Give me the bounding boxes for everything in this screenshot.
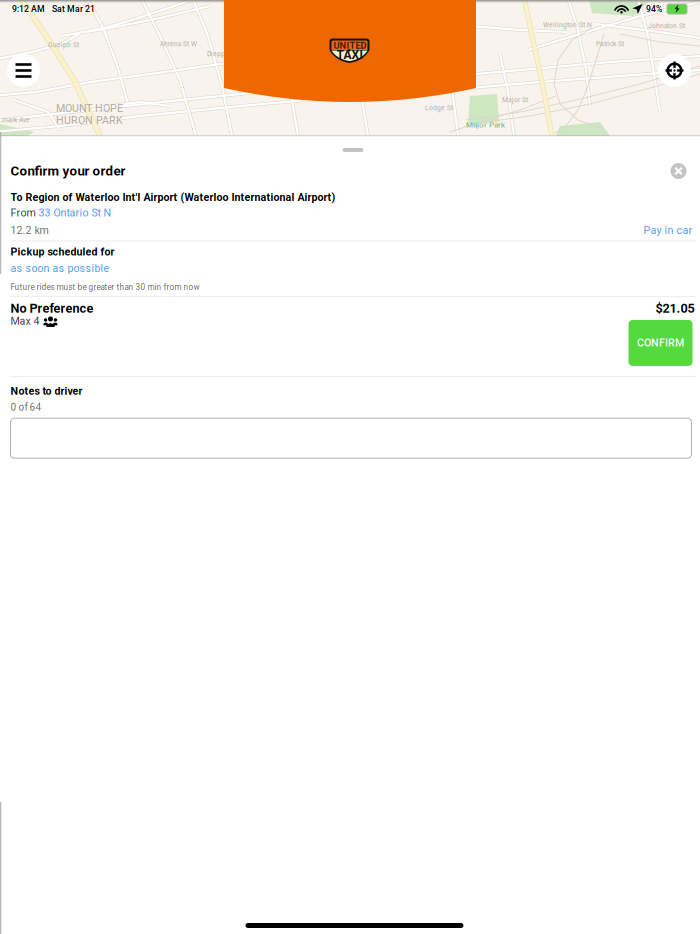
button[interactable]: as soon as possible <box>10 262 109 274</box>
staticText: Major St <box>502 96 528 104</box>
button[interactable]: Menu <box>7 54 40 87</box>
staticText: Max 4 <box>10 315 39 327</box>
staticText: 0 of 64 <box>10 401 41 413</box>
staticText: Major Park <box>466 120 505 129</box>
staticText: 33 Ontario St N <box>38 206 111 219</box>
staticText: Notes to driver <box>10 385 82 397</box>
staticText: UNITED <box>333 40 366 51</box>
button[interactable]: Locate me <box>658 54 691 87</box>
staticText: Pay in car <box>643 224 692 236</box>
staticText: HURON PARK <box>56 114 123 126</box>
staticText: MOUNT HOPE <box>56 102 123 114</box>
staticText: 9:12 AM <box>12 4 45 14</box>
staticText: Ahrens St W <box>160 40 197 48</box>
staticText: mark Ave <box>2 116 30 124</box>
staticText: Wellington St N <box>543 21 592 29</box>
staticText: From <box>10 206 38 219</box>
button[interactable]: Pay in car <box>643 224 692 236</box>
staticText: Dieppe Ave <box>207 50 242 58</box>
staticText: No Preference <box>10 301 93 316</box>
staticText: Patrick St <box>596 40 624 48</box>
staticText: Lodge St <box>425 104 453 112</box>
staticText: Guelph St <box>48 41 79 49</box>
staticText: To Region of Waterloo Int'l Airport (Wat… <box>10 191 335 203</box>
staticText: 94% <box>646 4 662 14</box>
staticText: Sat Mar 21 <box>52 4 95 14</box>
staticText: TAXI <box>336 48 363 62</box>
staticText: CONFIRM <box>637 337 684 349</box>
button[interactable]: CONFIRM <box>628 320 692 366</box>
staticText: Future rides must be greater than 30 min… <box>10 282 199 292</box>
staticText: Pickup scheduled for <box>10 245 114 258</box>
button[interactable]: Close <box>667 160 689 182</box>
staticText: 12.2 km <box>10 224 48 236</box>
staticText: as soon as possible <box>10 262 109 274</box>
staticText: Johnston St <box>648 22 685 30</box>
staticText: $21.05 <box>655 301 694 316</box>
staticText: Confirm your order <box>10 163 125 179</box>
